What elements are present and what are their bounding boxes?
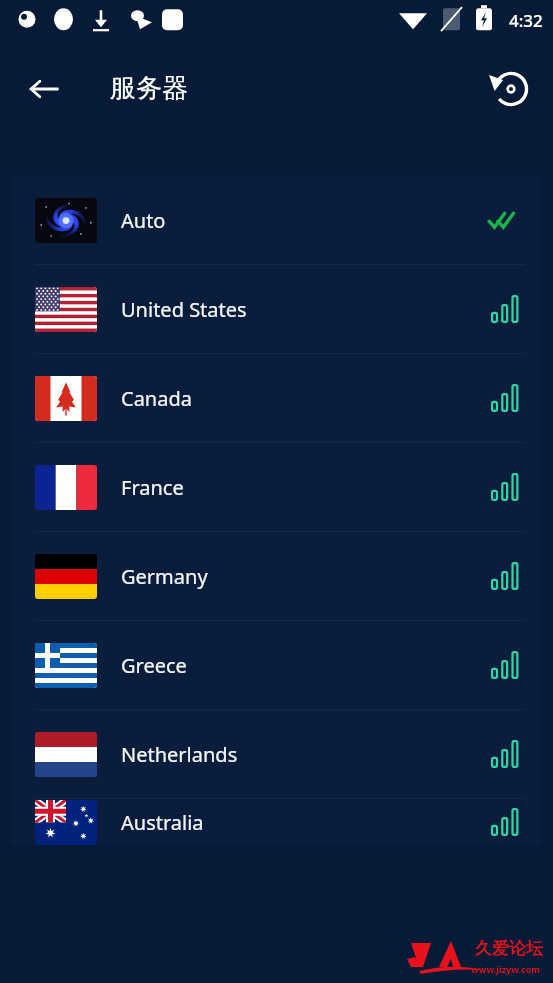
staticText: 久爱论坛 — [475, 938, 543, 959]
staticText: www.jizyw.com — [471, 963, 541, 975]
staticText: 服务器 — [110, 72, 188, 105]
other: Signal strength — [491, 808, 521, 836]
staticText: United States — [121, 296, 491, 323]
staticText: Auto — [121, 207, 487, 234]
button[interactable]: Greece — [11, 621, 541, 709]
staticText: Germany — [121, 563, 491, 590]
other: Selected — [487, 208, 521, 232]
button[interactable]: Netherlands — [11, 710, 541, 798]
staticText: Australia — [121, 809, 491, 836]
button[interactable]: Auto — [11, 176, 541, 264]
button[interactable]: Refresh — [487, 65, 535, 113]
other: Signal strength — [491, 473, 521, 501]
other: Signal strength — [491, 651, 521, 679]
staticText: France — [121, 474, 491, 501]
other: Signal strength — [491, 562, 521, 590]
other: Signal strength — [491, 295, 521, 323]
staticText: Netherlands — [121, 741, 491, 768]
button[interactable]: United States — [11, 265, 541, 353]
button[interactable]: Australia — [11, 799, 541, 845]
other: Signal strength — [491, 384, 521, 412]
staticText: Greece — [121, 652, 491, 679]
staticText: 4:32 — [509, 9, 543, 32]
button[interactable]: Germany — [11, 532, 541, 620]
button[interactable]: Canada — [11, 354, 541, 442]
button[interactable]: France — [11, 443, 541, 531]
other: Signal strength — [491, 740, 521, 768]
staticText: Canada — [121, 385, 491, 412]
button[interactable]: Back — [20, 65, 68, 113]
